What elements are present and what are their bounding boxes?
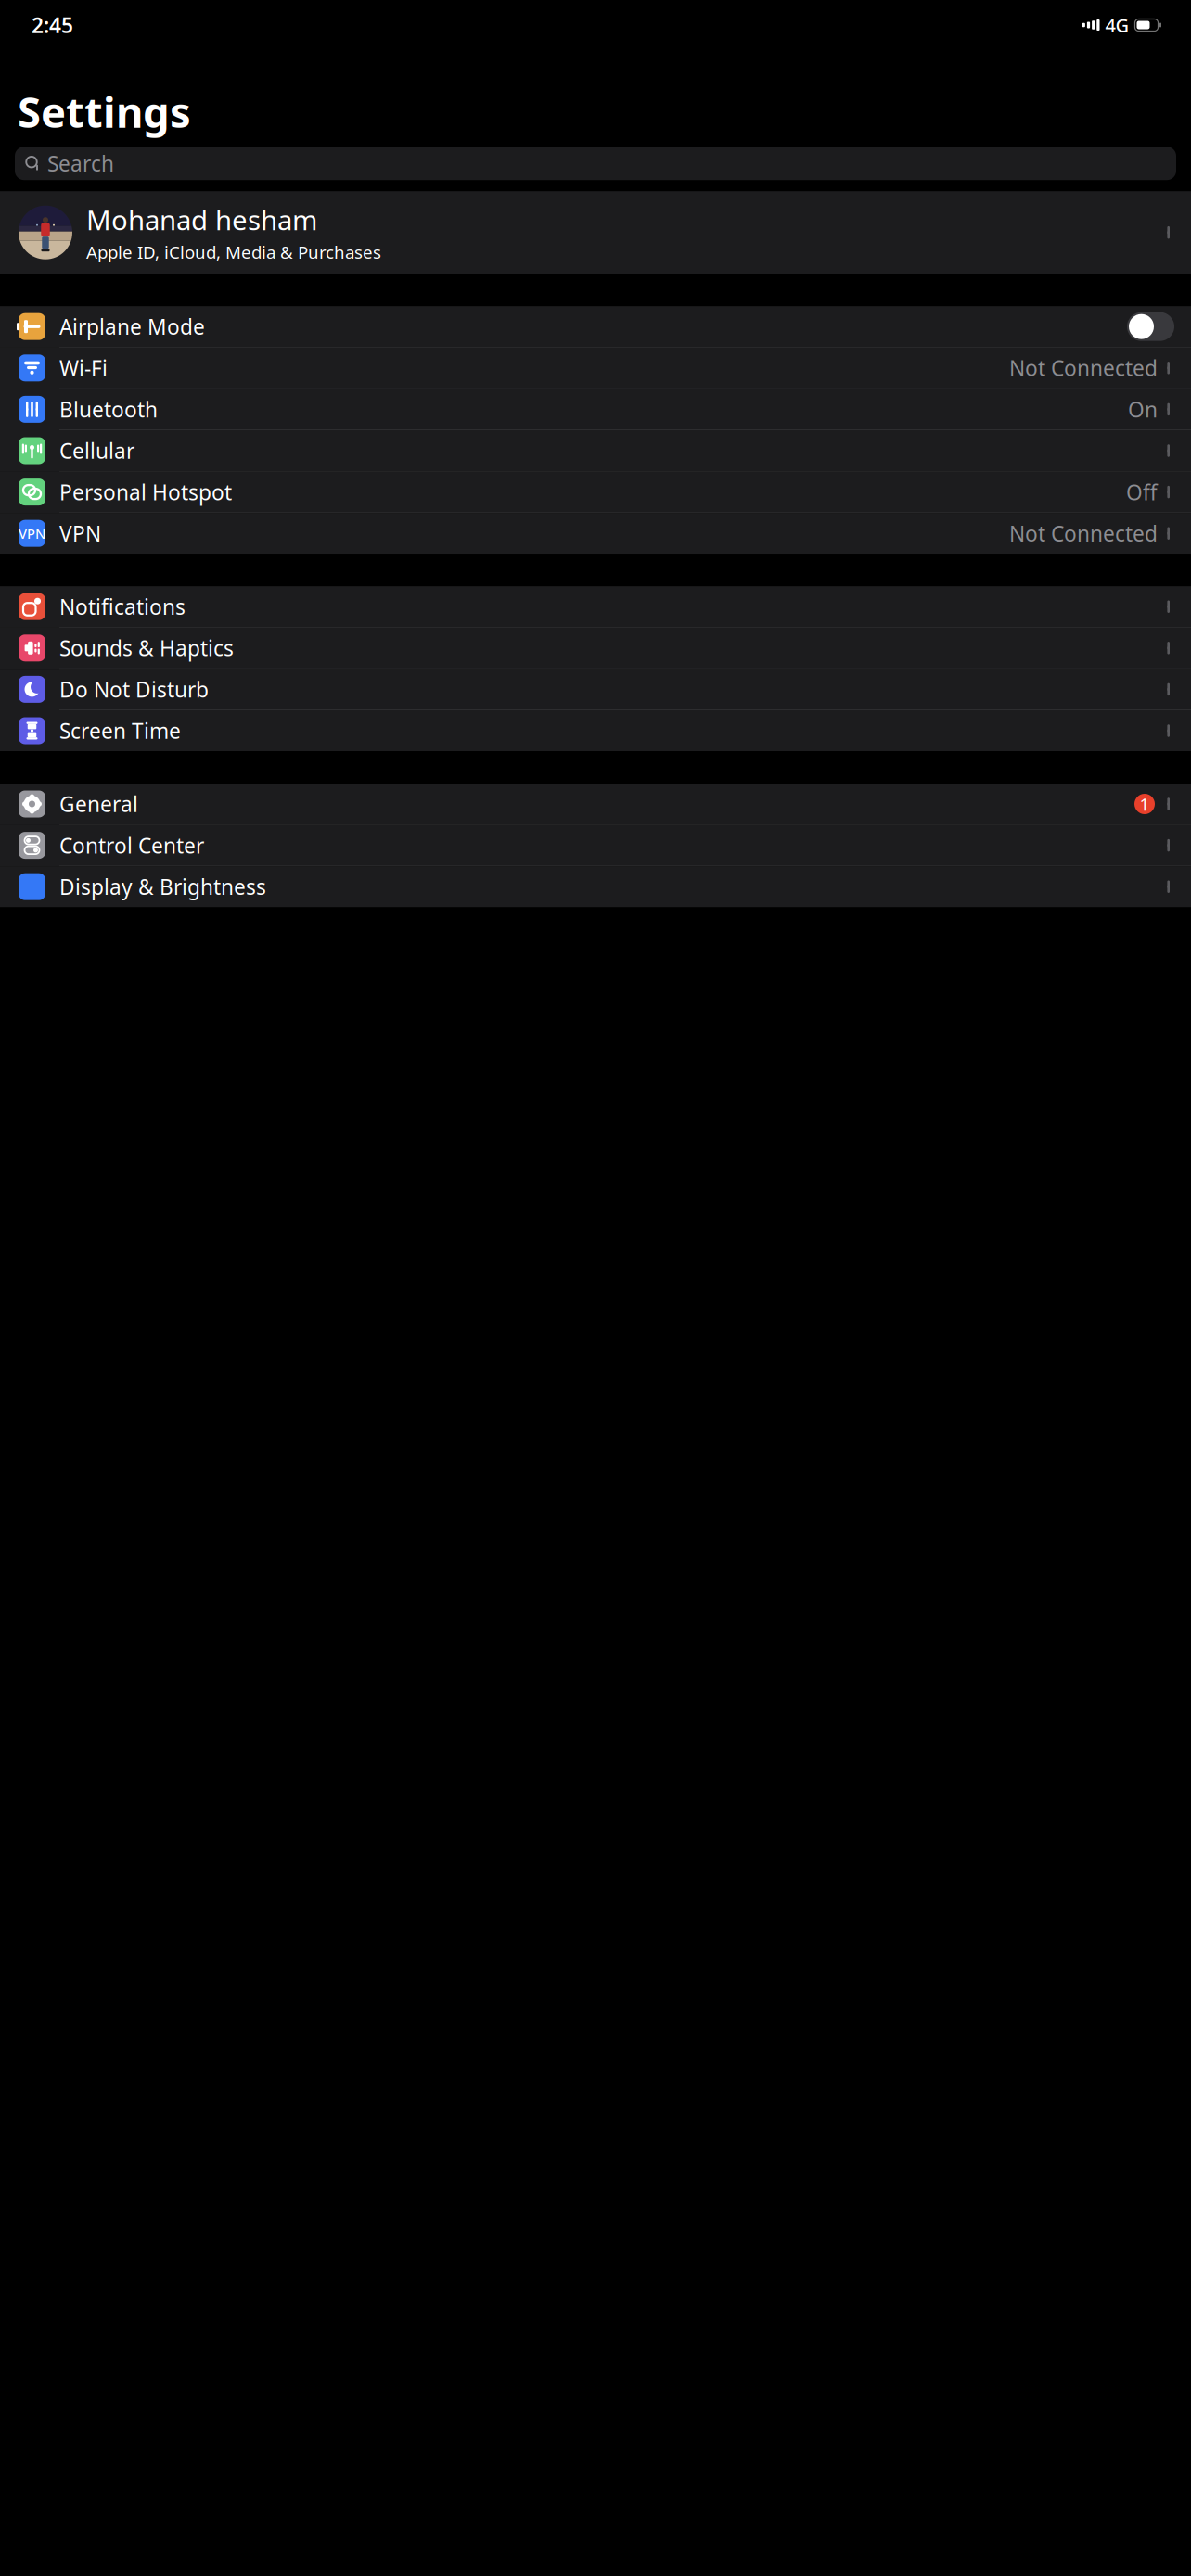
staticText: Display & Brightness	[59, 873, 266, 901]
staticText: Search	[47, 149, 114, 177]
staticText: General	[59, 790, 138, 818]
staticText: 2:45	[32, 11, 73, 39]
button[interactable]: Screen Time	[0, 710, 1191, 751]
staticText: Not Connected	[1009, 354, 1158, 382]
staticText: Control Center	[59, 831, 204, 859]
button[interactable]: Cellular	[0, 430, 1191, 472]
staticText: 1	[1140, 792, 1150, 815]
staticText: Do Not Disturb	[59, 675, 209, 703]
button[interactable]: Mohanad hesham	[0, 191, 1191, 274]
staticText: Apple ID, iCloud, Media & Purchases	[86, 240, 381, 263]
staticText: Mohanad hesham	[86, 201, 317, 238]
button[interactable]: Airplane Mode	[0, 306, 1191, 348]
staticText: Off	[1126, 478, 1158, 506]
staticText: Bluetooth	[59, 395, 158, 423]
staticText: Wi-Fi	[59, 354, 108, 382]
button[interactable]: Control Center	[0, 825, 1191, 866]
staticText: Not Connected	[1009, 519, 1158, 547]
button[interactable]	[0, 866, 1191, 907]
staticText: Screen Time	[59, 717, 181, 745]
staticText: Cellular	[59, 437, 134, 465]
button[interactable]: Sounds & Haptics	[0, 628, 1191, 669]
button[interactable]: Search	[15, 147, 1176, 180]
staticText: Airplane Mode	[59, 313, 205, 340]
staticText: 4G	[1105, 13, 1129, 37]
staticText: On	[1128, 395, 1158, 423]
button[interactable]: Do Not Disturb	[0, 669, 1191, 710]
button[interactable]: Wi-Fi	[0, 348, 1191, 389]
button[interactable]: Personal Hotspot	[0, 472, 1191, 513]
staticText: VPN	[59, 519, 101, 547]
button[interactable]: Notifications	[0, 586, 1191, 628]
staticText: Sounds & Haptics	[59, 634, 234, 662]
staticText: Settings	[18, 83, 191, 139]
staticText: VPN	[19, 524, 45, 542]
button[interactable]: VPN	[0, 513, 1191, 554]
staticText: Personal Hotspot	[59, 478, 232, 506]
button[interactable]: General	[0, 784, 1191, 825]
staticText: Notifications	[59, 593, 186, 621]
button[interactable]: Bluetooth	[0, 389, 1191, 430]
